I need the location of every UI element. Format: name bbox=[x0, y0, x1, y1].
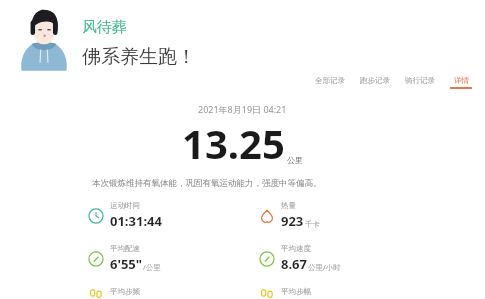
staticText: 公里/小时 bbox=[308, 262, 341, 272]
other: Duration bbox=[88, 208, 104, 224]
staticText: /公里 bbox=[143, 262, 161, 272]
staticText: 全部记录 bbox=[315, 76, 345, 85]
staticText: 骑行记录 bbox=[405, 76, 435, 85]
staticText: 运动时间 bbox=[110, 201, 140, 210]
staticText: 热量 bbox=[281, 201, 296, 210]
staticText: 13.25 bbox=[182, 116, 285, 170]
staticText: 公里 bbox=[287, 155, 303, 165]
button[interactable]: 骑行记录 bbox=[404, 74, 436, 91]
other: Cadence bbox=[259, 287, 275, 299]
button[interactable]: 全部记录 bbox=[314, 74, 346, 91]
other: Calories bbox=[259, 208, 275, 224]
button[interactable]: 跑步记录 bbox=[359, 74, 391, 91]
button[interactable]: Pace bbox=[88, 244, 259, 273]
button[interactable]: Calories bbox=[259, 201, 430, 230]
staticText: 风待葬 bbox=[82, 18, 127, 37]
staticText: 平均步幅 bbox=[281, 287, 311, 296]
staticText: 详情 bbox=[454, 76, 469, 85]
staticText: 跑步记录 bbox=[360, 76, 390, 85]
button[interactable]: Cadence bbox=[259, 287, 430, 299]
staticText: 8.67 bbox=[281, 255, 307, 273]
staticText: 923 bbox=[281, 212, 304, 230]
other: Cadence bbox=[88, 287, 104, 299]
other: Pace bbox=[259, 251, 275, 267]
other: User avatar bbox=[16, 6, 72, 72]
button[interactable]: Cadence bbox=[88, 287, 259, 299]
button[interactable]: Duration bbox=[88, 201, 259, 230]
staticText: 01:31:44 bbox=[110, 212, 162, 230]
staticText: 2021年8月19日 04:21 bbox=[198, 103, 287, 115]
staticText: 平均速度 bbox=[281, 244, 311, 253]
staticText: 佛系养生跑！ bbox=[82, 45, 196, 69]
staticText: 平均步频 bbox=[110, 287, 140, 296]
button[interactable]: 详情 bbox=[449, 74, 473, 91]
staticText: 6'55" bbox=[110, 255, 142, 273]
other: Pace bbox=[88, 251, 104, 267]
staticText: 本次锻炼维持有氧体能，巩固有氧运动能力，强度中等偏高。 bbox=[92, 178, 322, 189]
staticText: 千卡 bbox=[305, 220, 320, 229]
staticText: 平均配速 bbox=[110, 244, 140, 253]
button[interactable]: Pace bbox=[259, 244, 430, 273]
